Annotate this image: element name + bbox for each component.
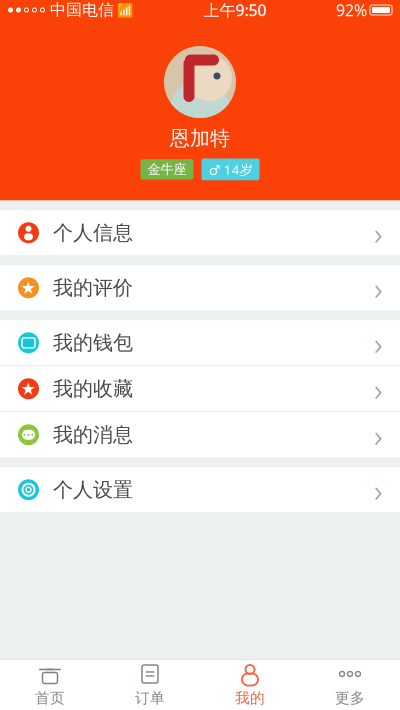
button[interactable]: 首页 [0, 660, 100, 710]
staticText: 更多 [335, 689, 365, 707]
staticText: › [374, 266, 382, 309]
staticText: 金牛座 [147, 161, 186, 178]
staticText: 首页 [35, 689, 65, 707]
button[interactable]: ★ [0, 366, 400, 411]
staticText: ★ [20, 379, 36, 399]
staticText: ♂ 14岁 [208, 161, 252, 178]
button[interactable]: 个人设置 [0, 467, 400, 512]
staticText: 我的钱包 [53, 330, 133, 355]
button[interactable]: 我的钱包 [0, 320, 400, 365]
staticText: › [374, 468, 382, 511]
button[interactable]: 我的 [200, 660, 300, 710]
staticText: 我的收藏 [53, 376, 133, 401]
staticText: 📶 [114, 1, 134, 19]
staticText: › [374, 211, 382, 254]
button[interactable]: 个人信息 [0, 210, 400, 255]
staticText: 中国电信 [45, 0, 114, 20]
staticText: 个人设置 [53, 477, 133, 502]
staticText: › [374, 367, 382, 410]
button[interactable]: 我的消息 [0, 412, 400, 457]
staticText: 恩加特 [170, 126, 230, 151]
button[interactable]: 更多 [300, 660, 400, 710]
staticText: › [374, 321, 382, 364]
staticText: 我的 [235, 689, 265, 707]
button[interactable]: 订单 [100, 660, 200, 710]
staticText: 92% [336, 0, 367, 21]
button[interactable]: ★ [0, 265, 400, 310]
staticText: ★ [20, 278, 36, 298]
staticText: 我的消息 [53, 422, 133, 447]
staticText: › [374, 413, 382, 456]
staticText: 订单 [135, 689, 165, 707]
staticText: 上午9:50 [203, 0, 266, 21]
staticText: 我的评价 [53, 275, 133, 300]
staticText: 个人信息 [53, 220, 133, 245]
